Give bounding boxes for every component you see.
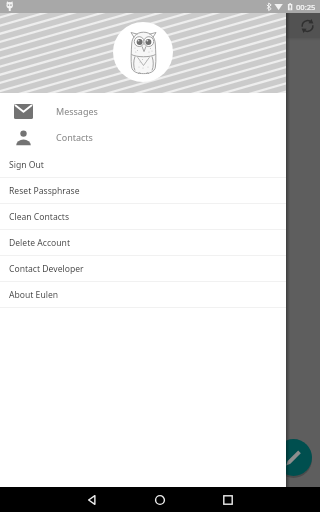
button[interactable]: Profile avatar — [113, 22, 173, 82]
button[interactable]: Delete Account — [0, 230, 286, 256]
button[interactable]: Compose message — [275, 439, 312, 476]
staticText: Contact Developer — [9, 263, 84, 275]
staticText: About Eulen — [9, 289, 59, 301]
button[interactable]: Messages — [0, 98, 286, 124]
staticText: 00:25 — [296, 2, 316, 12]
staticText: Messages — [56, 105, 98, 117]
button[interactable]: Clean Contacts — [0, 204, 286, 230]
button[interactable]: Home — [148, 487, 172, 512]
staticText: Sign Out — [9, 159, 44, 171]
button[interactable]: Sign Out — [0, 152, 286, 178]
button[interactable]: About Eulen — [0, 282, 286, 308]
button[interactable]: Recent apps — [216, 487, 240, 512]
button[interactable]: Contacts — [0, 124, 286, 150]
button[interactable]: Back — [80, 487, 104, 512]
staticText: Clean Contacts — [9, 211, 70, 223]
button[interactable]: Reset Passphrase — [0, 178, 286, 204]
staticText: Delete Account — [9, 237, 71, 249]
button[interactable]: Contact Developer — [0, 256, 286, 282]
staticText: Reset Passphrase — [9, 185, 80, 197]
button[interactable]: Refresh — [299, 17, 317, 35]
staticText: Contacts — [56, 131, 93, 143]
